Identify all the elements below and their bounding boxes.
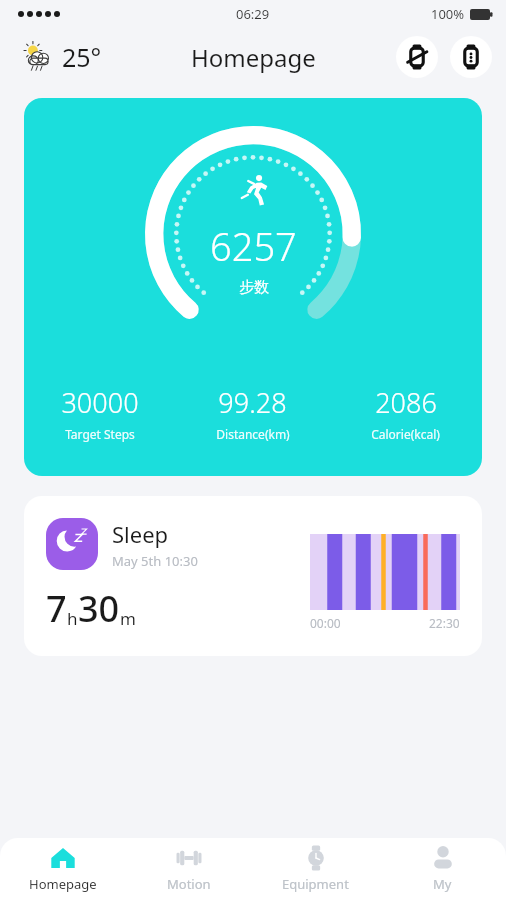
- staticText: 30: [78, 584, 120, 633]
- staticText: Homepage: [29, 875, 97, 893]
- button[interactable]: 30000: [24, 384, 176, 442]
- button[interactable]: Motion: [126, 838, 252, 900]
- staticText: Calorie(kcal): [371, 426, 440, 442]
- staticText: Sleep: [112, 519, 169, 549]
- staticText: 22:30: [429, 615, 460, 631]
- staticText: My: [433, 875, 452, 893]
- button[interactable]: 25°: [16, 34, 106, 80]
- staticText: 100%: [431, 5, 465, 23]
- staticText: May 5th 10:30: [112, 552, 198, 570]
- button[interactable]: Equipment: [252, 838, 379, 900]
- staticText: 步数: [239, 278, 269, 297]
- staticText: Motion: [167, 875, 211, 893]
- button[interactable]: Homepage: [0, 838, 126, 900]
- staticText: Distance(km): [216, 426, 290, 442]
- staticText: 99.28: [218, 384, 287, 421]
- staticText: 7: [46, 584, 67, 633]
- button[interactable]: Watch connected: [450, 36, 492, 78]
- staticText: 2086: [375, 384, 437, 421]
- staticText: 6257: [210, 220, 297, 272]
- button[interactable]: 2086: [329, 384, 482, 442]
- staticText: 00:00: [310, 615, 341, 631]
- staticText: 06:29: [236, 5, 270, 23]
- staticText: Target Steps: [65, 426, 135, 442]
- button[interactable]: Watch disconnected: [396, 36, 438, 78]
- staticText: m: [120, 607, 136, 630]
- button[interactable]: 6257: [24, 98, 482, 476]
- button[interactable]: 99.28: [176, 384, 329, 442]
- staticText: h: [67, 607, 78, 630]
- staticText: Equipment: [282, 875, 349, 893]
- button[interactable]: My: [379, 838, 506, 900]
- button[interactable]: Sleep: [24, 496, 482, 656]
- staticText: 25°: [62, 40, 102, 74]
- staticText: 30000: [61, 384, 139, 421]
- staticText: Homepage: [191, 41, 316, 74]
